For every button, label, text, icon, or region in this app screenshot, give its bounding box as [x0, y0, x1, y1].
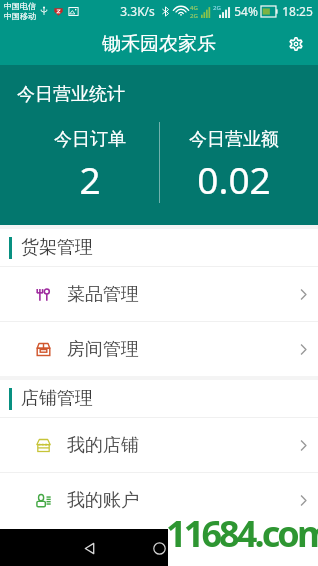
staticText: 0.02 [197, 154, 271, 204]
staticText: 18:25 [282, 3, 313, 19]
button[interactable]: 菜品管理 [0, 267, 318, 321]
button[interactable]: Home [141, 530, 177, 566]
button[interactable]: Back [71, 530, 107, 566]
staticText: 菜品管理 [67, 283, 139, 306]
staticText: 4G [190, 4, 198, 12]
staticText: 2G [213, 4, 221, 12]
staticText: 中国电信 [4, 1, 36, 11]
staticText: 11684.com [166, 509, 318, 558]
staticText: 54% [234, 3, 258, 19]
staticText: 2G [190, 12, 198, 18]
staticText: 3.3K/s [120, 3, 155, 19]
staticText: 我的店铺 [67, 434, 139, 457]
button[interactable]: 房间管理 [0, 322, 318, 376]
staticText: 2 [79, 154, 101, 204]
staticText: 今日订单 [54, 128, 126, 151]
staticText: 货架管理 [21, 236, 93, 259]
button[interactable]: 我的账户 [0, 473, 318, 527]
staticText: 今日营业额 [189, 128, 279, 151]
button[interactable]: Settings [278, 26, 314, 62]
staticText: 锄禾园农家乐 [102, 32, 216, 56]
staticText: 店铺管理 [21, 387, 93, 410]
button[interactable]: 我的店铺 [0, 418, 318, 472]
staticText: 中国移动 [4, 11, 36, 21]
staticText: 房间管理 [67, 338, 139, 361]
staticText: 我的账户 [67, 489, 139, 512]
staticText: 今日营业统计 [17, 83, 125, 106]
